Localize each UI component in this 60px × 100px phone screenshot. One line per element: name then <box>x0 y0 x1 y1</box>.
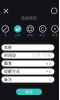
staticText: 提醒方式 <box>4 69 20 74</box>
button[interactable]: 时间段 <box>1 52 54 59</box>
staticText: 12:00 13:00 <box>32 54 52 57</box>
button[interactable]: 其他 <box>49 25 60 37</box>
staticText: 选择类型 <box>21 16 37 20</box>
staticText: 保存 <box>25 89 33 94</box>
button[interactable]: 保存 <box>16 89 42 95</box>
staticText: 时间段 <box>4 53 16 58</box>
button[interactable]: 提醒方式 <box>1 68 54 75</box>
staticText: 名称 <box>4 45 12 50</box>
staticText: 无 <box>49 78 52 81</box>
button[interactable]: 加密 <box>24 25 36 37</box>
button[interactable]: Close <box>0 5 11 16</box>
button[interactable]: 定位 <box>36 25 49 37</box>
button[interactable]: 名称 <box>1 44 54 51</box>
staticText: 声音 <box>46 70 52 73</box>
staticText: 备注 <box>4 77 12 82</box>
button[interactable]: 正常 <box>12 25 24 37</box>
staticText: 其他 <box>52 33 58 37</box>
staticText: 加密 <box>27 33 33 37</box>
button[interactable]: 重复 <box>1 60 54 67</box>
button[interactable]: 无 <box>0 25 12 37</box>
button[interactable]: 备注 <box>1 76 54 83</box>
staticText: 无 <box>4 33 7 37</box>
staticText: 定位 <box>40 33 46 37</box>
button[interactable]: Help <box>49 6 59 16</box>
staticText: 正常 <box>15 33 21 37</box>
staticText: 每天 <box>46 62 52 65</box>
staticText: 重复 <box>4 61 12 66</box>
